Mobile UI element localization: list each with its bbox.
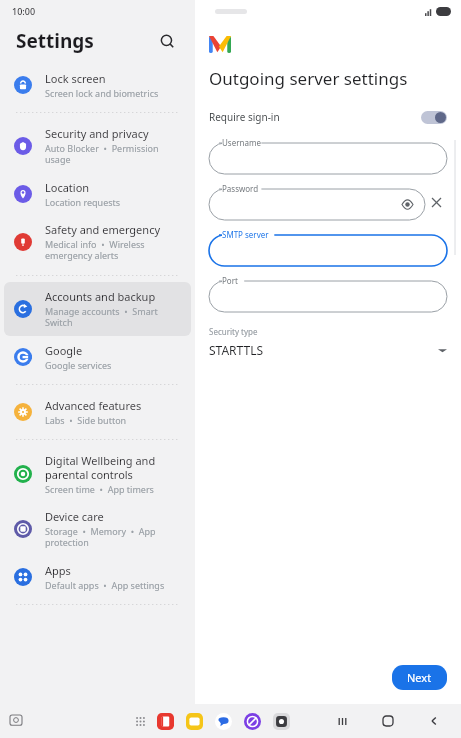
button[interactable]: Security type bbox=[195, 324, 461, 360]
staticText: Security and privacy bbox=[45, 126, 149, 141]
button[interactable]: Security and privacy bbox=[4, 119, 191, 173]
button[interactable]: Internet bbox=[241, 710, 263, 732]
staticText: Location bbox=[45, 180, 90, 195]
staticText: Default apps • App settings bbox=[45, 579, 165, 591]
staticText: Google services bbox=[45, 359, 112, 371]
button[interactable]: Recents bbox=[329, 708, 355, 734]
button[interactable]: Capture bbox=[6, 711, 26, 731]
button[interactable]: Accounts and backup bbox=[4, 282, 191, 336]
staticText: Screen time • App timers bbox=[45, 483, 154, 495]
button[interactable]: Next bbox=[392, 665, 447, 690]
button[interactable]: Back bbox=[421, 708, 447, 734]
button[interactable]: Search bbox=[153, 27, 181, 55]
button[interactable]: Clear bbox=[425, 191, 447, 213]
staticText: Location requests bbox=[45, 196, 121, 208]
button[interactable]: Apps bbox=[4, 556, 191, 598]
button[interactable]: Require sign-in bbox=[195, 106, 461, 128]
staticText: Port bbox=[222, 275, 238, 286]
staticText: Auto Blocker • Permission usage bbox=[45, 142, 183, 166]
staticText: Screen lock and biometrics bbox=[45, 87, 159, 99]
staticText: Outgoing server settings bbox=[209, 67, 408, 90]
staticText: Storage • Memory • App protection bbox=[45, 525, 183, 549]
button[interactable]: Location bbox=[4, 173, 191, 215]
button[interactable]: Device care bbox=[4, 502, 191, 556]
staticText: Labs • Side button bbox=[45, 414, 127, 426]
button[interactable]: Messages bbox=[212, 710, 234, 732]
button[interactable]: Username bbox=[209, 138, 447, 174]
button[interactable]: Google bbox=[4, 336, 191, 378]
button[interactable]: Camera bbox=[270, 710, 292, 732]
staticText: 10:00 bbox=[12, 5, 36, 17]
button[interactable]: Gallery bbox=[183, 710, 205, 732]
button[interactable]: Samsung Notes bbox=[154, 710, 176, 732]
staticText: Manage accounts • Smart Switch bbox=[45, 305, 183, 329]
staticText: Apps bbox=[45, 563, 71, 578]
button[interactable]: All apps bbox=[130, 711, 150, 731]
staticText: Lock screen bbox=[45, 71, 106, 86]
staticText: Digital Wellbeing and parental controls bbox=[45, 453, 183, 482]
button[interactable]: Advanced features bbox=[4, 391, 191, 433]
staticText: Settings bbox=[16, 28, 94, 54]
button[interactable]: Port bbox=[209, 276, 447, 312]
button[interactable]: Lock screen bbox=[4, 64, 191, 106]
staticText: Safety and emergency bbox=[45, 222, 161, 237]
staticText: Medical info • Wireless emergency alerts bbox=[45, 238, 183, 262]
staticText: Next bbox=[407, 670, 432, 685]
staticText: Password bbox=[222, 183, 259, 194]
staticText: SMTP server bbox=[222, 229, 269, 240]
staticText: Advanced features bbox=[45, 398, 142, 413]
staticText: Username bbox=[222, 137, 261, 148]
staticText: Accounts and backup bbox=[45, 289, 156, 304]
staticText: Device care bbox=[45, 509, 104, 524]
button[interactable]: Show password bbox=[399, 196, 415, 212]
button[interactable]: Safety and emergency bbox=[4, 215, 191, 269]
staticText: STARTTLS bbox=[209, 342, 438, 358]
button[interactable]: Digital Wellbeing and parental controls bbox=[4, 446, 191, 502]
staticText: Google bbox=[45, 343, 83, 358]
button[interactable]: SMTP server bbox=[209, 230, 447, 266]
staticText: Security type bbox=[209, 326, 258, 337]
button[interactable]: Home bbox=[375, 708, 401, 734]
button[interactable]: Password bbox=[209, 184, 425, 220]
staticText: Require sign-in bbox=[209, 110, 421, 124]
